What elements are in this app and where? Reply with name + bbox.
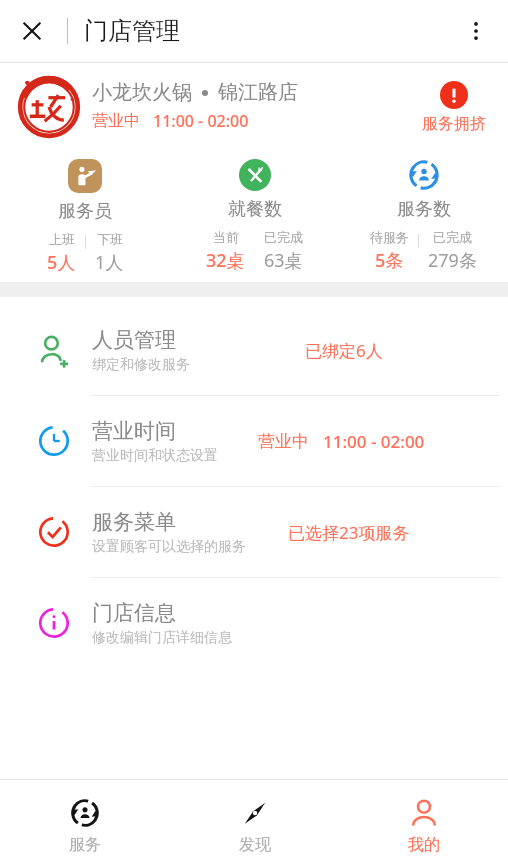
staticText: 当前 [213,229,239,245]
staticText: 设置顾客可以选择的服务 [92,538,246,556]
staticText: 下班 [97,231,123,247]
staticText: 就餐数 [228,198,282,221]
button[interactable]: 我的 [339,780,508,866]
button[interactable]: 服务员 [0,151,170,271]
staticText: 上班 [49,231,75,247]
staticText: 已完成 [264,229,303,245]
button[interactable]: Close [8,7,56,55]
staticText: 服务员 [58,200,112,223]
staticText: 待服务 [370,229,409,245]
staticText: 营业中 [92,111,140,131]
button[interactable]: 营业时间 [0,396,508,486]
staticText: 服务拥挤 [422,114,486,134]
staticText: 绑定和修改服务 [92,356,190,374]
button[interactable]: More options [452,7,500,55]
staticText: 门店信息 [92,600,176,626]
staticText: 已绑定6人 [305,339,383,362]
button[interactable]: 门店信息 [0,578,508,668]
staticText: 发现 [239,835,271,855]
staticText: 1人 [95,250,124,271]
button[interactable]: 服务拥挤 [422,81,486,134]
staticText: 营业时间 [92,418,176,444]
button[interactable]: 服务 [0,780,170,866]
staticText: 5条 [375,248,404,271]
staticText: 修改编辑门店详细信息 [92,629,232,647]
staticText: 人员管理 [92,327,176,353]
staticText: 营业中 [258,431,309,452]
staticText: 32桌 [206,248,245,271]
staticText: 锦江路店 [218,80,298,105]
staticText: 服务 [69,835,101,855]
button[interactable]: 服务数 [339,151,508,271]
staticText: 营业时间和状态设置 [92,447,218,465]
staticText: 63桌 [264,248,303,271]
staticText: 5人 [47,250,76,271]
button[interactable]: 人员管理 [0,305,508,395]
staticText: 门店管理 [84,16,180,46]
staticText: 服务菜单 [92,509,176,535]
button[interactable]: 就餐数 [170,151,339,271]
button[interactable]: 服务菜单 [0,487,508,577]
staticText: 11:00 - 02:00 [153,110,249,132]
staticText: 11:00 - 02:00 [323,430,425,453]
button[interactable]: 发现 [170,780,339,866]
staticText: 小龙坎火锅 [92,80,192,105]
staticText: 服务数 [397,198,451,221]
staticText: 已选择23项服务 [288,521,410,544]
staticText: 我的 [408,835,440,855]
staticText: 已完成 [433,229,472,245]
staticText: 279条 [428,248,477,271]
